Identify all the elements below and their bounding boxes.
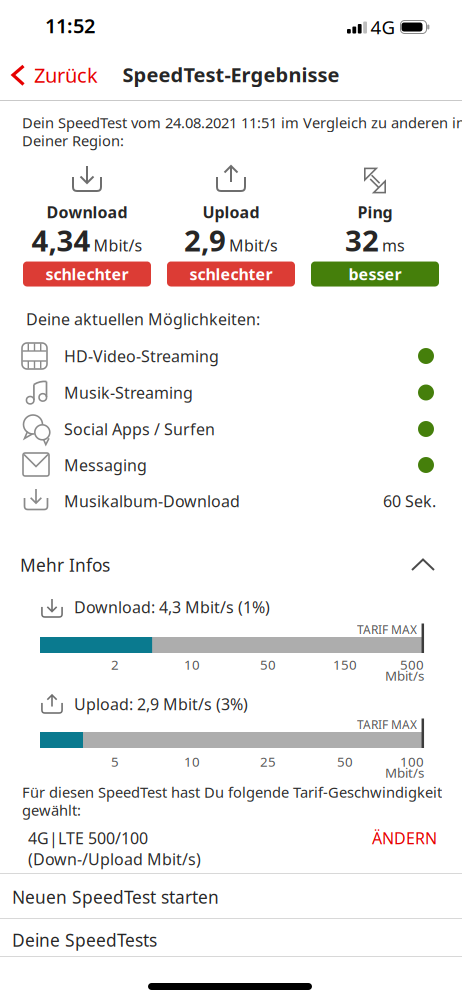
staticText: 10 [184,753,200,770]
button[interactable]: schlechter [23,261,151,286]
staticText: schlechter [189,263,272,285]
staticText: ms [382,234,405,256]
staticText: Deiner Region: [22,131,124,150]
staticText: Upload [202,201,259,223]
staticText: 2,9 [184,220,226,259]
staticText: 100 [400,753,424,770]
staticText: schlechter [45,263,128,285]
staticText: 60 Sek. [383,490,436,512]
button[interactable]: Mehr Infos einklappen [0,545,462,585]
staticText: Mbit/s [229,234,278,256]
staticText: ÄNDERN [372,827,437,849]
staticText: Neuen SpeedTest starten [12,885,219,908]
button[interactable]: Deine SpeedTests [0,921,462,958]
staticText: Musik-Streaming [64,382,193,403]
staticText: Mbit/s [385,764,424,781]
staticText: 4G [370,15,395,39]
staticText: 150 [333,656,357,673]
staticText: 2 [111,656,119,673]
staticText: HD-Video-Streaming [64,345,219,367]
staticText: 5 [111,753,119,770]
staticText: Download [46,201,127,223]
button[interactable]: Neuen SpeedTest starten [0,875,462,919]
staticText: Ping [357,201,392,223]
button[interactable]: Zurück [8,52,104,96]
staticText: Messaging [64,454,147,476]
staticText: 50 [337,753,353,770]
staticText: Musikalbum-Download [64,490,240,512]
staticText: 11:52 [45,12,95,39]
staticText: SpeedTest-Ergebnisse [122,61,339,88]
staticText: 25 [260,753,276,770]
button[interactable]: besser [311,261,439,286]
staticText: TARIF MAX [357,716,417,732]
staticText: Mehr Infos [20,553,110,576]
staticText: Mbit/s [385,667,424,684]
staticText: besser [348,263,401,285]
staticText: Deine SpeedTests [12,928,157,951]
staticText: TARIF MAX [357,621,417,637]
staticText: Mbit/s [93,234,142,256]
staticText: Social Apps / Surfen [64,418,215,440]
staticText: 4G|LTE 500/100 [28,827,148,849]
staticText: 4,34 [31,220,90,259]
staticText: 10 [184,656,200,673]
button[interactable]: schlechter [167,261,295,286]
staticText: Zurück [34,62,98,88]
staticText: Dein SpeedTest vom 24.08.2021 11:51 im V… [22,113,462,132]
staticText: Upload: 2,9 Mbit/s (3%) [74,693,248,715]
staticText: Deine aktuellen Möglichkeiten: [26,308,260,330]
staticText: gewählt: [22,800,81,820]
staticText: 500 [400,656,424,673]
staticText: 32 [345,220,379,259]
staticText: (Down-/Upload Mbit/s) [28,848,201,870]
staticText: 50 [260,656,276,673]
staticText: Für diesen SpeedTest hast Du folgende Ta… [22,782,442,802]
staticText: Download: 4,3 Mbit/s (1%) [74,596,270,618]
button[interactable]: ÄNDERN [337,823,437,853]
